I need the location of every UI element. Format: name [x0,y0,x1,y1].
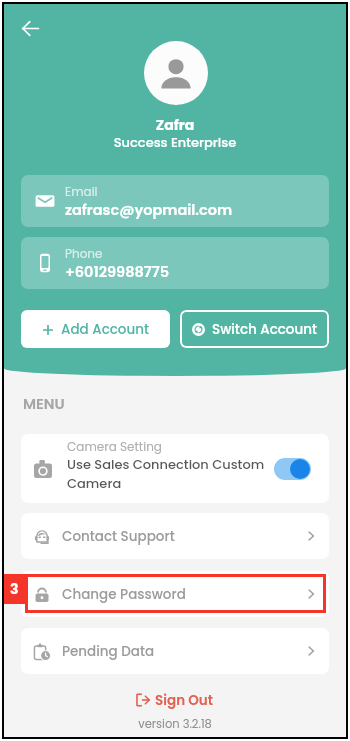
button[interactable]: Email [21,175,329,227]
button[interactable]: Contact Support [21,513,329,559]
button[interactable]: Phone [21,237,329,289]
staticText: version 3.2.18 [4,716,346,732]
staticText: Camera Setting [67,438,162,455]
staticText: Phone [65,245,103,262]
staticText: Success Enterprise [4,133,346,151]
staticText: zafrasc@yopmail.com [65,200,233,220]
staticText: MENU [23,394,65,414]
button[interactable]: Sign Out [4,691,346,709]
button[interactable]: Add Account [21,310,170,348]
staticText: Email [65,183,98,200]
button[interactable]: Back [12,10,48,46]
staticText: 3 [10,579,19,599]
button[interactable]: Use custom camera toggle [274,458,311,480]
staticText: Change Password [62,585,305,604]
button[interactable]: Camera Setting [21,434,329,503]
staticText: Zafra [4,115,346,135]
staticText: +60129988775 [65,262,170,282]
staticText: Add Account [61,320,149,339]
staticText: Contact Support [62,527,305,546]
staticText: Pending Data [62,642,305,661]
button[interactable]: Switch Account [180,310,329,348]
staticText: Use Sales Connection Custom Camera [67,455,276,492]
staticText: Sign Out [155,691,214,709]
button[interactable]: Change Password [21,571,329,617]
staticText: Switch Account [212,320,318,339]
button[interactable]: Pending Data [21,628,329,674]
